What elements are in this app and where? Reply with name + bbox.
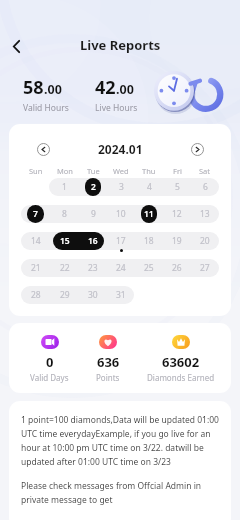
staticText: 29 — [60, 289, 70, 301]
staticText: 14 — [31, 235, 41, 247]
staticText: 636 — [97, 353, 120, 371]
staticText: .00 — [44, 81, 62, 98]
staticText: 42 — [95, 75, 116, 100]
button[interactable]: 17 — [107, 232, 135, 250]
staticText: 25 — [144, 262, 154, 274]
button[interactable]: 18 — [135, 232, 163, 250]
button[interactable]: 0 — [30, 335, 69, 383]
button[interactable]: 20 — [191, 232, 219, 250]
button[interactable]: 15 — [50, 232, 79, 250]
staticText: 27 — [200, 262, 210, 274]
button[interactable]: Previous month — [35, 141, 51, 157]
staticText: 22 — [60, 262, 70, 274]
staticText: 23 — [88, 262, 98, 274]
staticText: Mon — [57, 166, 73, 176]
button[interactable]: 29 — [50, 286, 79, 304]
staticText: Sat — [199, 166, 211, 176]
staticText: 9 — [91, 208, 96, 220]
staticText: 12 — [172, 208, 182, 220]
button[interactable]: 30 — [79, 286, 107, 304]
staticText: 18 — [144, 235, 154, 247]
button[interactable]: 5 — [163, 178, 191, 196]
staticText: .00 — [116, 81, 134, 98]
staticText: 4 — [147, 181, 152, 193]
staticText: 26 — [172, 262, 182, 274]
button[interactable]: 25 — [135, 259, 163, 277]
staticText: 3 — [119, 181, 124, 193]
button[interactable]: 14 — [21, 232, 50, 250]
staticText: 16 — [88, 235, 98, 247]
staticText: 31 — [116, 289, 126, 301]
button[interactable]: 636 — [96, 335, 120, 383]
staticText: Wed — [113, 166, 129, 176]
staticText: 28 — [31, 289, 41, 301]
button[interactable]: 3 — [107, 178, 135, 196]
button[interactable]: 27 — [191, 259, 219, 277]
staticText: 1 — [62, 181, 67, 193]
staticText: 20 — [200, 235, 210, 247]
button[interactable]: 9 — [79, 205, 107, 223]
staticText: Thu — [142, 166, 156, 176]
staticText: 17 — [116, 235, 126, 247]
staticText: 2024.01 — [98, 141, 143, 157]
staticText: Valid Hours — [23, 102, 69, 114]
staticText: 19 — [172, 235, 182, 247]
button[interactable]: 12 — [163, 205, 191, 223]
staticText: Points — [96, 372, 120, 383]
button[interactable]: 1 — [50, 178, 79, 196]
button[interactable]: 22 — [50, 259, 79, 277]
staticText: 10 — [116, 208, 126, 220]
button[interactable]: 26 — [163, 259, 191, 277]
staticText: 2 — [91, 181, 96, 193]
staticText: 15 — [60, 235, 70, 247]
button[interactable]: 11 — [135, 205, 163, 223]
staticText: 11 — [144, 208, 154, 220]
staticText: Please check messages from Offcial Admin… — [21, 480, 221, 505]
staticText: Live Reports — [80, 36, 161, 54]
button[interactable]: 28 — [21, 286, 50, 304]
staticText: 13 — [200, 208, 210, 220]
button[interactable]: 21 — [21, 259, 50, 277]
staticText: 0 — [46, 353, 54, 371]
staticText: 30 — [88, 289, 98, 301]
button[interactable]: 63602 — [147, 335, 215, 383]
button[interactable]: 23 — [79, 259, 107, 277]
staticText: Fri — [173, 166, 182, 176]
staticText: 21 — [31, 262, 41, 274]
staticText: 1 point=100 diamonds,Data will be update… — [21, 414, 221, 467]
button[interactable]: 24 — [107, 259, 135, 277]
staticText: 58 — [23, 75, 44, 100]
button[interactable]: 10 — [107, 205, 135, 223]
button[interactable]: 13 — [191, 205, 219, 223]
button[interactable]: Back — [4, 34, 29, 59]
button[interactable]: 16 — [79, 232, 107, 250]
button[interactable]: Next month — [189, 141, 205, 157]
staticText: 24 — [116, 262, 126, 274]
button[interactable]: 7 — [21, 205, 50, 223]
button[interactable]: 19 — [163, 232, 191, 250]
staticText: 7 — [33, 208, 38, 220]
button[interactable]: 31 — [107, 286, 135, 304]
staticText: Sun — [29, 166, 43, 176]
staticText: 63602 — [162, 353, 200, 371]
button[interactable]: 6 — [191, 178, 219, 196]
button[interactable]: 2 — [79, 178, 107, 196]
staticText: Diamonds Earned — [147, 372, 215, 383]
staticText: Tue — [87, 166, 100, 176]
staticText: 6 — [203, 181, 208, 193]
staticText: 8 — [62, 208, 67, 220]
staticText: Live Hours — [95, 102, 138, 114]
button[interactable]: 8 — [50, 205, 79, 223]
button[interactable]: 4 — [135, 178, 163, 196]
staticText: 5 — [175, 181, 180, 193]
staticText: Valid Days — [30, 372, 69, 383]
